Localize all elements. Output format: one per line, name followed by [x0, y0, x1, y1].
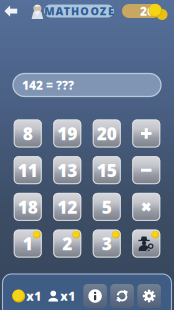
button[interactable]: Players x1 — [48, 288, 75, 304]
button[interactable]: Back — [1, 1, 21, 21]
staticText: 142 = ??? — [22, 77, 74, 93]
button[interactable]: 12 — [53, 193, 81, 221]
button[interactable]: Multiply — [132, 193, 160, 221]
button[interactable]: Hint 3 — [93, 230, 121, 258]
button[interactable]: 18 — [14, 193, 42, 221]
button[interactable]: Coins x1 — [12, 288, 41, 304]
button[interactable]: 19 — [53, 119, 81, 147]
button[interactable]: Plus — [132, 119, 160, 147]
staticText: x1 — [26, 288, 41, 304]
staticText: 19 — [57, 122, 77, 145]
staticText: 2 — [62, 232, 72, 255]
staticText: MATHOOZE — [44, 4, 114, 18]
button[interactable]: 8 — [14, 119, 42, 147]
button[interactable]: Restart — [110, 284, 134, 308]
button[interactable]: 5 — [93, 193, 121, 221]
staticText: 3 — [102, 232, 112, 255]
staticText: 11 — [18, 159, 38, 182]
button[interactable]: Hint 2 — [53, 230, 81, 258]
button[interactable]: Hint 1 — [14, 230, 42, 258]
button[interactable]: Settings — [137, 284, 161, 308]
button[interactable]: Info — [83, 284, 107, 308]
button[interactable]: 13 — [53, 156, 81, 184]
staticText: 20 — [97, 122, 117, 145]
staticText: 12 — [57, 195, 77, 218]
staticText: 5 — [102, 195, 112, 218]
button[interactable]: Solve — [132, 230, 160, 258]
staticText: 26 — [140, 3, 154, 19]
staticText: 1 — [23, 232, 33, 255]
staticText: 15 — [97, 159, 117, 182]
button[interactable]: 15 — [93, 156, 121, 184]
staticText: 8 — [23, 122, 33, 145]
staticText: 18 — [18, 195, 38, 218]
button[interactable]: 20 — [93, 119, 121, 147]
button[interactable]: Minus — [132, 156, 160, 184]
button[interactable]: 11 — [14, 156, 42, 184]
button[interactable]: 26 coins — [122, 1, 174, 21]
staticText: 13 — [57, 159, 77, 182]
staticText: x1 — [60, 288, 75, 304]
